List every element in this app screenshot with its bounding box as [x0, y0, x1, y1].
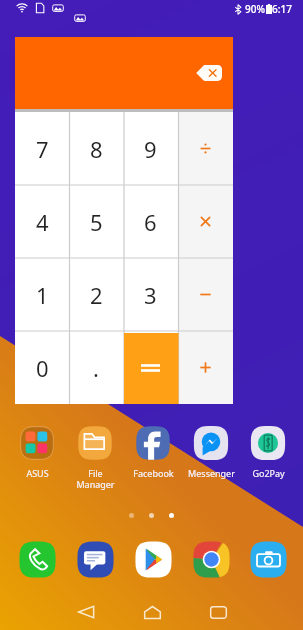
- button[interactable]: 8: [69, 112, 123, 185]
- staticText: 9: [144, 134, 157, 164]
- button[interactable]: Facebook: [124, 424, 182, 479]
- button[interactable]: Back: [70, 596, 102, 628]
- button[interactable]: Go2Pay: [239, 424, 297, 479]
- staticText: Facebook: [133, 467, 174, 479]
- button[interactable]: 6: [123, 185, 178, 258]
- button[interactable]: Backspace: [195, 65, 222, 81]
- staticText: 6:17: [272, 2, 292, 16]
- staticText: 0: [36, 353, 49, 383]
- staticText: ASUS: [26, 467, 49, 479]
- staticText: Messenger: [188, 467, 235, 479]
- button[interactable]: [178, 185, 233, 258]
- button[interactable]: File Manager: [66, 424, 124, 490]
- staticText: File Manager: [76, 467, 115, 490]
- staticText: 5: [90, 207, 103, 237]
- button[interactable]: Phone: [15, 537, 59, 581]
- button[interactable]: 9: [123, 112, 178, 185]
- staticText: 4: [36, 207, 49, 237]
- staticText: Go2Pay: [252, 467, 285, 479]
- button[interactable]: 4: [15, 185, 69, 258]
- button[interactable]: 7: [15, 112, 69, 185]
- button[interactable]: 3: [123, 258, 178, 331]
- staticText: 7: [36, 134, 49, 164]
- button[interactable]: [178, 258, 233, 331]
- button[interactable]: Home: [136, 596, 168, 628]
- button[interactable]: 2: [69, 258, 123, 331]
- staticText: 8: [90, 134, 103, 164]
- button[interactable]: [123, 331, 178, 404]
- button[interactable]: 5: [69, 185, 123, 258]
- button[interactable]: Recents: [202, 596, 234, 628]
- button[interactable]: ASUS: [8, 424, 66, 479]
- button[interactable]: [178, 112, 233, 185]
- staticText: 3: [144, 280, 157, 310]
- button[interactable]: 0: [15, 331, 69, 404]
- staticText: 2: [90, 280, 103, 310]
- button[interactable]: 1: [15, 258, 69, 331]
- button[interactable]: Play Store: [131, 537, 175, 581]
- staticText: 90%: [245, 2, 265, 16]
- button[interactable]: [178, 331, 233, 404]
- button[interactable]: .: [69, 331, 123, 404]
- button[interactable]: Camera: [246, 537, 290, 581]
- button[interactable]: Chrome: [189, 537, 233, 581]
- button[interactable]: Messages: [73, 537, 117, 581]
- button[interactable]: Messenger: [182, 424, 240, 479]
- staticText: .: [93, 353, 99, 383]
- staticText: 6: [144, 207, 157, 237]
- staticText: 1: [36, 280, 49, 310]
